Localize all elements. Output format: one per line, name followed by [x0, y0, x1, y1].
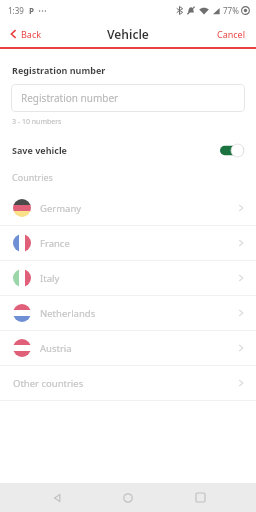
button[interactable]: Back	[0, 24, 52, 44]
button[interactable]: Save vehicle	[0, 139, 256, 161]
staticText: 77%	[223, 5, 239, 16]
staticText: Registration number	[21, 91, 119, 105]
staticText: Vehicle	[107, 26, 149, 42]
button[interactable]: Home	[113, 483, 143, 512]
button[interactable]: Austria	[0, 331, 256, 365]
staticText: Other countries	[13, 377, 84, 390]
button[interactable]: France	[0, 226, 256, 260]
staticText: Netherlands	[40, 307, 96, 320]
button[interactable]: Other countries	[0, 366, 256, 400]
staticText: France	[40, 237, 70, 250]
button[interactable]: Registration number	[11, 84, 245, 112]
button[interactable]: Back	[42, 483, 72, 512]
staticText: Save vehicle	[12, 144, 67, 156]
button[interactable]: Recents	[185, 483, 215, 512]
staticText: Germany	[40, 202, 82, 215]
button[interactable]: Netherlands	[0, 296, 256, 330]
staticText: Registration number	[12, 64, 106, 76]
staticText: Countries	[12, 171, 53, 183]
staticText: P	[29, 5, 34, 16]
staticText: Cancel	[217, 28, 246, 40]
staticText: 1:39	[8, 5, 24, 16]
button[interactable]: Italy	[0, 261, 256, 295]
staticText: 3 - 10 numbers	[12, 117, 62, 127]
staticText: Austria	[40, 342, 72, 355]
staticText: Back	[21, 28, 42, 40]
staticText: Italy	[40, 272, 60, 285]
button[interactable]: Cancel	[207, 24, 256, 44]
button[interactable]: Germany	[0, 191, 256, 225]
